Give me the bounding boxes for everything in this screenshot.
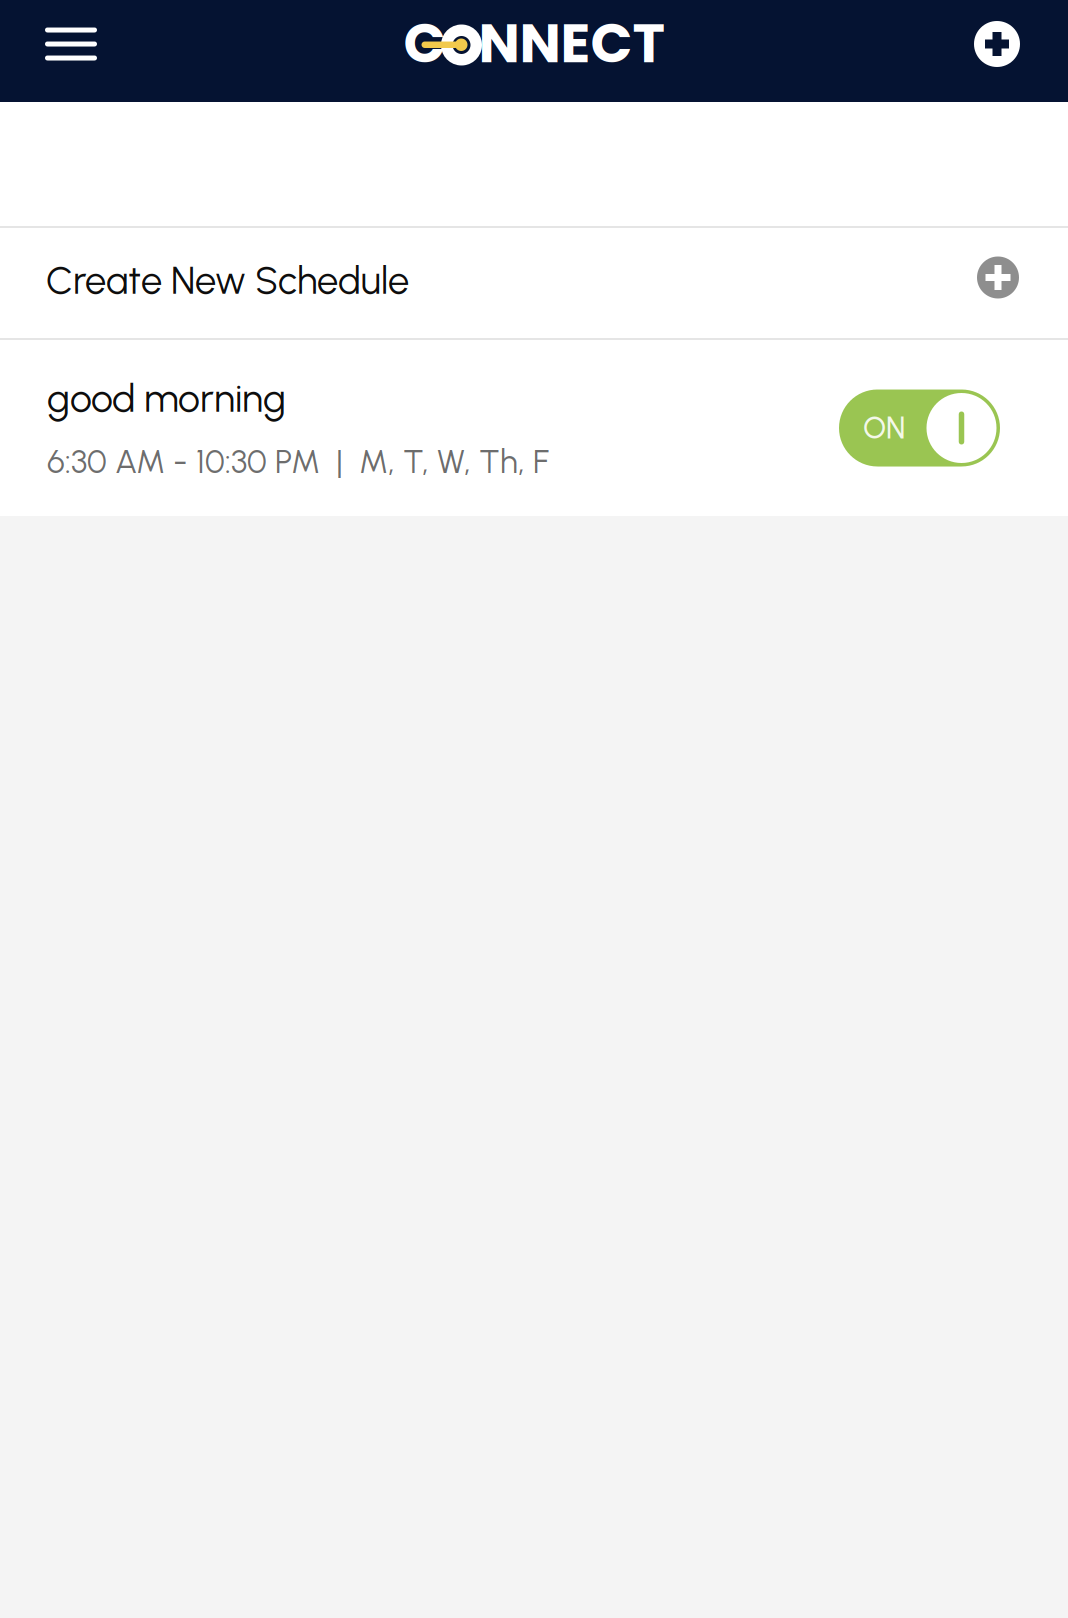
staticText: 6:30 AM - 10:30 PM | M, T, W, Th, F	[47, 442, 549, 481]
button[interactable]: Create New Schedule	[0, 228, 1068, 338]
staticText: NNECT	[478, 4, 665, 81]
staticText: Create New Schedule	[46, 258, 409, 303]
staticText: C	[403, 4, 445, 81]
staticText: ON	[863, 410, 905, 446]
button[interactable]: Add schedule	[950, 0, 1068, 88]
button[interactable]: good morning schedule on	[839, 389, 1000, 466]
staticText: good morning	[47, 375, 286, 422]
button[interactable]: Menu	[0, 0, 121, 88]
